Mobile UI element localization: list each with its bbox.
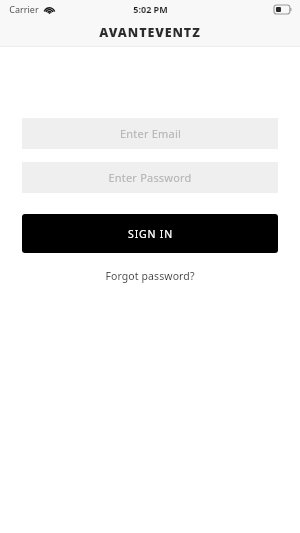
- staticText: Forgot password?: [105, 269, 195, 283]
- staticText: AVANTEVENTZ: [99, 24, 201, 41]
- staticText: 5:02 PM: [133, 3, 168, 15]
- button[interactable]: SIGN IN: [22, 214, 278, 253]
- button[interactable]: Enter Password: [22, 162, 278, 193]
- button[interactable]: Forgot password?: [97, 266, 203, 286]
- staticText: Enter Password: [108, 170, 192, 185]
- button[interactable]: Enter Email: [22, 118, 278, 149]
- staticText: SIGN IN: [128, 227, 173, 241]
- staticText: Enter Email: [120, 126, 181, 141]
- staticText: Carrier: [9, 3, 39, 15]
